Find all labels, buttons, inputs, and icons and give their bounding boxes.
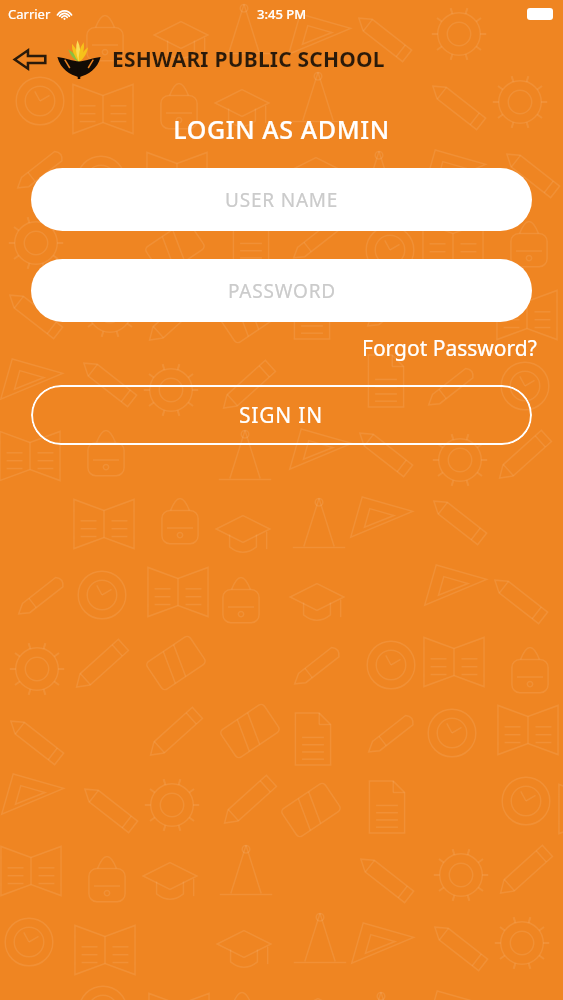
button[interactable]: USER NAME — [31, 168, 532, 231]
staticText: 3:45 PM — [257, 5, 307, 23]
staticText: PASSWORD — [228, 278, 336, 304]
staticText: Carrier — [8, 5, 51, 23]
staticText: USER NAME — [225, 187, 339, 213]
staticText: Forgot Password? — [362, 334, 537, 363]
button[interactable]: Back — [8, 40, 52, 78]
staticText: ESHWARI PUBLIC SCHOOL — [112, 45, 385, 74]
button[interactable]: PASSWORD — [31, 259, 532, 322]
staticText: LOGIN AS ADMIN — [0, 112, 563, 146]
button[interactable]: Forgot Password? — [358, 330, 541, 367]
staticText: SIGN IN — [239, 401, 324, 430]
button[interactable]: SIGN IN — [31, 385, 532, 445]
